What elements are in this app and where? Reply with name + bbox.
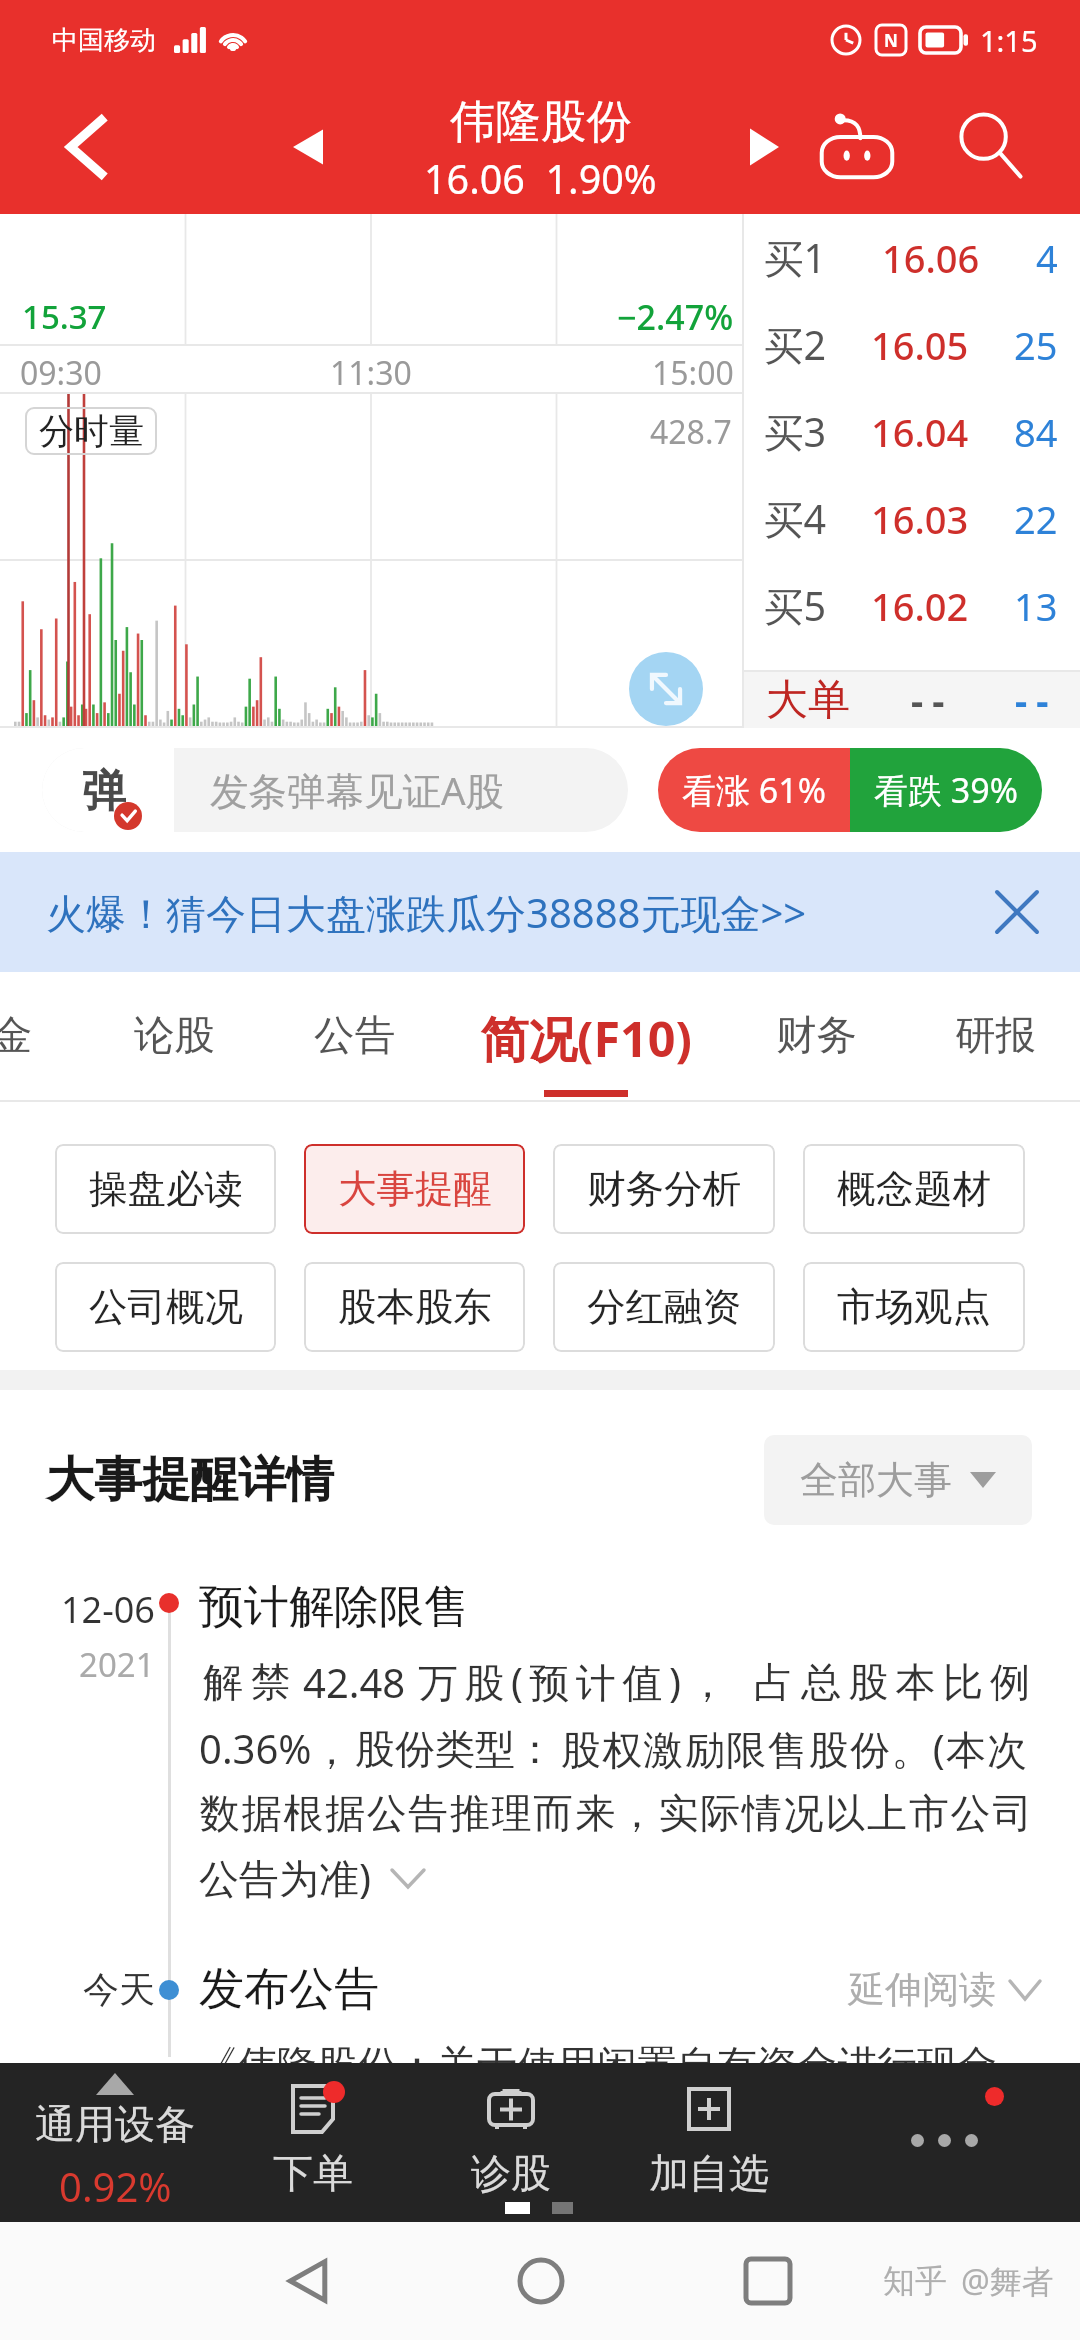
staticText: --	[911, 674, 954, 726]
button[interactable]: 看涨 61%	[658, 748, 850, 832]
staticText: 金	[0, 1010, 33, 1061]
staticText: 11:30	[330, 351, 412, 395]
button[interactable]: 通用设备	[0, 2063, 230, 2222]
staticText: 看涨 61%	[682, 767, 826, 813]
staticText: 0.92%	[59, 2159, 172, 2213]
staticText: 13	[1014, 580, 1058, 632]
button[interactable]: AI assistant	[807, 97, 907, 197]
button[interactable]: 概念题材	[803, 1144, 1025, 1234]
staticText: 16.05	[871, 319, 969, 371]
staticText: 买4	[764, 492, 827, 546]
staticText: 预计解除限售	[199, 1579, 469, 1636]
button[interactable]: Fullscreen chart	[629, 652, 703, 726]
staticText: 分时量	[39, 409, 144, 453]
staticText: 研报	[955, 1010, 1036, 1061]
staticText: 15:00	[652, 351, 734, 395]
button[interactable]: 市场观点	[803, 1262, 1025, 1352]
staticText: 0.36%，	[199, 1721, 352, 1776]
button[interactable]: 全部大事	[764, 1435, 1032, 1525]
button[interactable]: 弹	[42, 748, 628, 832]
button[interactable]: More options	[810, 2063, 1080, 2222]
button[interactable]: 延伸阅读	[848, 1966, 1080, 2013]
button[interactable]: 下单	[214, 2063, 412, 2222]
staticText: 09:30	[20, 351, 102, 395]
button[interactable]: 金	[0, 972, 122, 1102]
button[interactable]: Home	[505, 2245, 577, 2317]
staticText: 买5	[764, 579, 827, 633]
staticText: 下单	[273, 2148, 353, 2198]
button[interactable]: 诊股	[412, 2063, 610, 2222]
staticText: @舞者	[961, 2259, 1054, 2303]
staticText: 发条弹幕见证A股	[210, 764, 505, 817]
staticText: 占总股本比例	[754, 1657, 1038, 1707]
button[interactable]: 大单	[744, 672, 1080, 728]
staticText: 428.7	[650, 410, 732, 454]
staticText: 公司概况	[89, 1283, 243, 1332]
staticText: 15.37	[22, 294, 107, 339]
staticText: 16.04	[871, 406, 969, 458]
button[interactable]: 买4	[744, 475, 1080, 562]
button[interactable]: 加自选	[610, 2063, 808, 2222]
staticText: 今天	[83, 1967, 155, 2012]
staticText: 解禁	[199, 1657, 295, 1707]
button[interactable]: Close banner	[982, 877, 1052, 947]
staticText: 发布公告	[199, 1961, 379, 2018]
button[interactable]: Expand	[385, 1855, 431, 1901]
button[interactable]: 大事提醒	[304, 1144, 525, 1234]
staticText: 《伟隆股份：关于使用闲置自有资金进行现金	[197, 2040, 997, 2090]
staticText: 股本股东	[338, 1283, 492, 1332]
button[interactable]: 股本股东	[304, 1262, 525, 1352]
staticText: 加自选	[649, 2148, 769, 2198]
staticText: --	[1015, 674, 1058, 726]
staticText: 数据根据公告推理而来，实际情况以上市公司	[199, 1788, 1033, 1838]
staticText: 股份类型：	[355, 1724, 555, 1774]
staticText: 全部大事	[800, 1456, 952, 1504]
button[interactable]: 看跌 39%	[850, 748, 1042, 832]
staticText: 简况(F10)	[480, 1005, 692, 1071]
staticText: 分红融资	[587, 1283, 741, 1332]
button[interactable]: 财务分析	[553, 1144, 775, 1234]
button[interactable]: 买3	[744, 388, 1080, 475]
staticText: 16.03	[871, 493, 969, 545]
button[interactable]: Previous stock	[276, 115, 340, 179]
staticText: 看跌 39%	[874, 767, 1018, 813]
staticText: 万股(预计值)，	[418, 1654, 734, 1709]
staticText: 16.06 1.90%	[424, 152, 657, 206]
button[interactable]: 公司概况	[55, 1262, 276, 1352]
button[interactable]: 论股	[64, 972, 284, 1102]
button[interactable]: 买1	[744, 214, 1080, 301]
button[interactable]: Recents	[732, 2245, 804, 2317]
staticText: 买1	[764, 231, 827, 285]
staticText: N	[884, 29, 898, 52]
button[interactable]: 火爆！猜今日大盘涨跌瓜分38888元现金>>	[46, 885, 807, 940]
staticText: 弹	[82, 764, 126, 816]
button[interactable]: 简况(F10)	[476, 972, 696, 1102]
button[interactable]: 研报	[885, 972, 1080, 1102]
staticText: 2021	[79, 1642, 155, 1687]
staticText: 买3	[764, 405, 827, 459]
staticText: 1:15	[980, 21, 1038, 60]
staticText: 25	[1014, 319, 1058, 371]
staticText: 概念题材	[837, 1165, 991, 1214]
staticText: 通用设备	[35, 2099, 195, 2149]
staticText: 操盘必读	[89, 1165, 243, 1214]
button[interactable]: Back	[272, 2245, 344, 2317]
staticText: 22	[1014, 493, 1058, 545]
staticText: 中国移动	[52, 24, 156, 57]
staticText: 12-06	[61, 1585, 155, 1634]
button[interactable]: Back	[48, 109, 124, 185]
staticText: 延伸阅读	[848, 1966, 996, 2013]
button[interactable]: 操盘必读	[55, 1144, 276, 1234]
button[interactable]: Search	[941, 97, 1041, 197]
staticText: 公告	[314, 1010, 395, 1061]
button[interactable]: 分红融资	[553, 1262, 775, 1352]
staticText: 16.06	[882, 232, 980, 284]
button[interactable]: 买2	[744, 301, 1080, 388]
button[interactable]: 买5	[744, 562, 1080, 649]
button[interactable]: 公告	[244, 972, 464, 1102]
button[interactable]: Next stock	[728, 111, 800, 183]
staticText: 财务分析	[587, 1165, 741, 1214]
staticText: 大单	[766, 674, 850, 727]
button[interactable]: 财务	[706, 972, 926, 1102]
staticText: 伟隆股份	[450, 93, 632, 150]
